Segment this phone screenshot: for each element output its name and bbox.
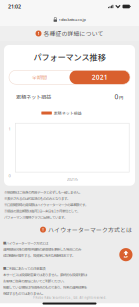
staticText: 0	[115, 92, 119, 101]
staticText: ■ハイウォーターマーク方式とは	[3, 241, 48, 246]
button[interactable]: 全期間	[9, 70, 69, 84]
staticText: ■ご利用にあたっての注意事項	[3, 266, 45, 271]
staticText: 全期間	[32, 73, 47, 81]
staticText: © Robo Katsu Securities Co., Ltd. All ri…	[32, 296, 106, 299]
button[interactable]: ハイウォーターマーク方式とは	[0, 225, 139, 235]
staticText: パフォーマンス推移グラフに反映しています。	[4, 215, 67, 220]
staticText: パフォーマンス推移	[33, 51, 105, 63]
staticText: 成功報酬が発生する、投資家に有利な報酬体系です。	[3, 253, 75, 258]
staticText: 本サービスは投資助言業ではありません。最終的な投資判断は	[3, 272, 87, 277]
button[interactable]: 各種証の詳細について	[0, 26, 139, 41]
staticText: 21:02	[8, 3, 21, 10]
staticText: ※損益額はご自身の売買データと必ずしも一致しません。	[4, 190, 82, 195]
staticText: robo.katsu.co.jp	[58, 17, 85, 22]
staticText: ハイウォーターマーク方式とは	[48, 225, 132, 234]
staticText: 累積ネット損益	[16, 93, 51, 100]
staticText: 各種証の詳細について	[43, 29, 103, 38]
staticText: 2021	[92, 73, 108, 82]
staticText: 1	[8, 126, 10, 131]
staticText: 掲載している情報は作成時点のものであり、将来の運用成果を	[3, 285, 87, 290]
staticText: お客様ご自身の責任においてご判断ください。	[3, 278, 66, 283]
staticText: 2021/5	[67, 176, 78, 182]
staticText: ※口座開設時の資産額はハイウォーターマークの基準額です。	[4, 202, 88, 207]
staticText: 累積ネット損益	[54, 110, 82, 116]
button[interactable]: robo.katsu.co.jp	[0, 13, 139, 26]
staticText: ※損益の算出期間は毎月1日〜末日を1か月単位として、	[4, 208, 80, 213]
staticText: 円	[119, 94, 123, 101]
staticText: TOP	[123, 255, 128, 259]
staticText: 保証するものではありません。	[3, 291, 45, 296]
staticText: 運用開始以降の資産評価額の最高値を更新した場合にのみ	[3, 247, 81, 252]
button[interactable]: Back to top	[119, 248, 132, 261]
staticText: 0	[8, 173, 10, 178]
staticText: ※表示されるのは約定済のもののみとなります。	[4, 196, 70, 201]
button[interactable]: 2021	[69, 70, 130, 84]
